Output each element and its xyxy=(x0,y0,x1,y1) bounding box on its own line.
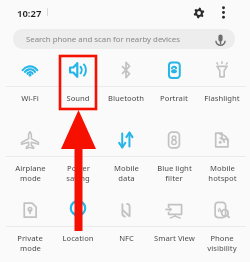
button[interactable]: More options xyxy=(214,3,233,22)
button[interactable]: Wi-Fi xyxy=(6,54,54,124)
staticText: filter xyxy=(165,173,183,183)
button[interactable]: Blue light xyxy=(150,124,198,194)
button[interactable]: Flashlight xyxy=(198,54,246,124)
button[interactable]: Airplane xyxy=(6,124,54,194)
button[interactable]: Sound xyxy=(54,54,102,124)
staticText: Mobile xyxy=(114,163,139,173)
staticText: Smart View xyxy=(154,233,195,243)
button[interactable]: Bluetooth xyxy=(102,54,150,124)
staticText: Bluetooth xyxy=(108,93,144,103)
button[interactable]: NFC xyxy=(102,194,150,262)
button[interactable]: Location xyxy=(54,194,102,262)
staticText: Location xyxy=(62,233,94,243)
button[interactable]: Mobile xyxy=(198,124,246,194)
other: Voice search xyxy=(214,33,227,46)
button[interactable]: Search phone and scan for nearby devices xyxy=(13,29,235,49)
staticText: mode xyxy=(20,173,41,183)
staticText: visibility xyxy=(207,243,237,253)
staticText: Mobile xyxy=(210,163,235,173)
staticText: Phone xyxy=(210,233,234,243)
button[interactable]: Power xyxy=(54,124,102,194)
staticText: Sound xyxy=(66,93,90,103)
staticText: Power xyxy=(67,163,90,173)
staticText: Portrait xyxy=(160,93,188,103)
button[interactable]: Mobile xyxy=(102,124,150,194)
staticText: NFC xyxy=(119,233,134,243)
staticText: Wi-Fi xyxy=(21,93,39,103)
staticText: Private xyxy=(17,233,43,243)
staticText: Search phone and scan for nearby devices xyxy=(26,34,180,45)
staticText: mode xyxy=(20,243,41,253)
button[interactable]: Smart View xyxy=(150,194,198,262)
staticText: saving xyxy=(66,173,90,183)
button[interactable]: Portrait xyxy=(150,54,198,124)
staticText: Airplane xyxy=(15,163,46,173)
button[interactable]: Settings xyxy=(189,3,209,23)
staticText: Flashlight xyxy=(204,93,240,103)
staticText: data xyxy=(118,173,135,183)
staticText: hotspot xyxy=(208,173,237,183)
staticText: 10:27 xyxy=(17,7,42,20)
staticText: Blue light xyxy=(157,163,192,173)
button[interactable]: Phone xyxy=(198,194,246,262)
button[interactable]: Private xyxy=(6,194,54,262)
